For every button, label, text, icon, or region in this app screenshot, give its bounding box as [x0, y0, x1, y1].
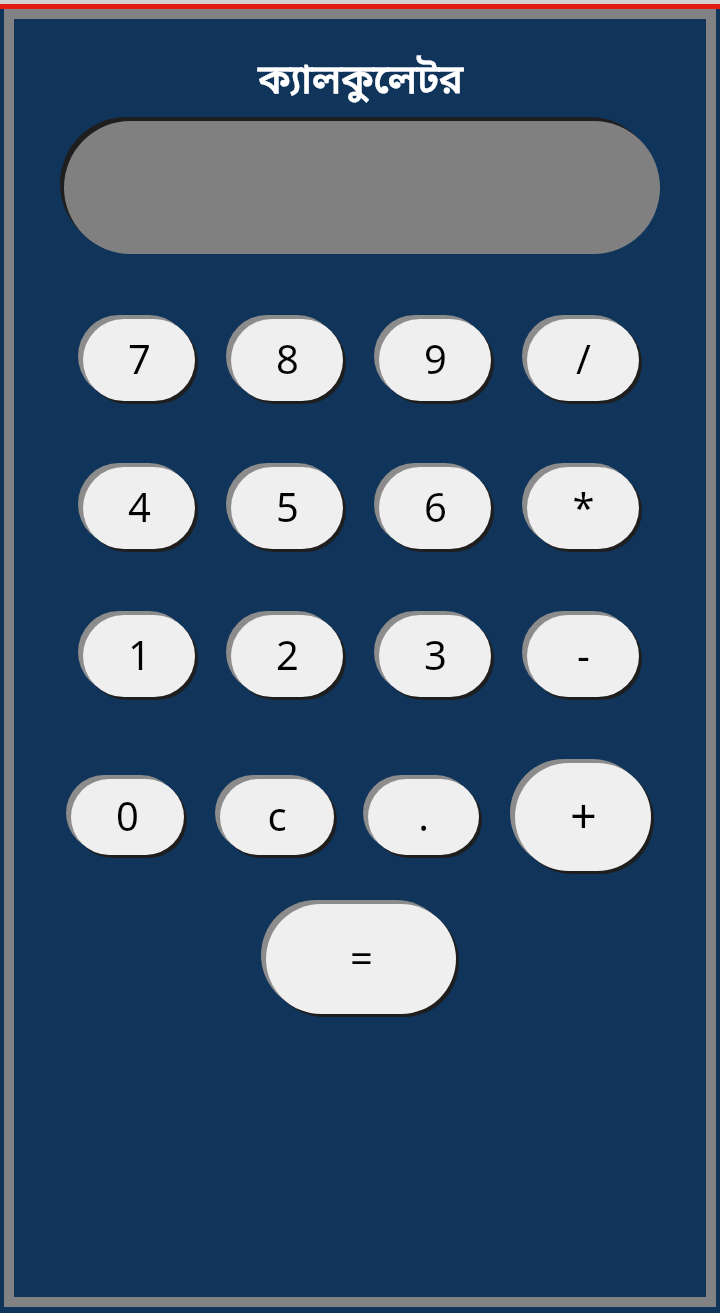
button[interactable]: 3	[379, 615, 491, 697]
button[interactable]: c	[220, 779, 334, 855]
button[interactable]: 2	[231, 615, 343, 697]
staticText: 5	[276, 479, 299, 533]
staticText: -	[577, 627, 590, 681]
button[interactable]: 6	[379, 467, 491, 549]
button[interactable]: 9	[379, 319, 491, 401]
staticText: ক্যালকুলেটর	[258, 56, 463, 109]
button[interactable]: 4	[83, 467, 195, 549]
button[interactable]: *	[527, 467, 639, 549]
button[interactable]: +	[515, 763, 651, 871]
button[interactable]: 0	[71, 779, 184, 855]
button[interactable]: -	[527, 615, 639, 697]
button[interactable]: /	[527, 319, 639, 401]
staticText: /	[576, 331, 591, 385]
staticText: 3	[424, 627, 447, 681]
staticText: .	[418, 788, 429, 842]
button[interactable]: =	[266, 904, 456, 1014]
button[interactable]: 1	[83, 615, 195, 697]
staticText: 4	[128, 479, 151, 533]
staticText: 7	[128, 331, 151, 385]
staticText: 9	[424, 331, 447, 385]
staticText: c	[267, 788, 287, 842]
button[interactable]: .	[368, 779, 479, 855]
button[interactable]: 8	[231, 319, 343, 401]
staticText: +	[570, 783, 597, 847]
button[interactable]	[64, 121, 660, 254]
button[interactable]: 7	[83, 319, 195, 401]
staticText: *	[572, 479, 595, 533]
button[interactable]: 5	[231, 467, 343, 549]
staticText: 8	[276, 331, 299, 385]
staticText: 6	[424, 479, 447, 533]
staticText: 0	[116, 788, 139, 842]
staticText: 2	[276, 627, 299, 681]
staticText: 1	[128, 627, 151, 681]
staticText: =	[350, 930, 373, 984]
